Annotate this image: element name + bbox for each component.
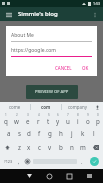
staticText: i — [77, 117, 79, 125]
button[interactable]: Space — [32, 154, 78, 169]
button[interactable]: 2 — [11, 112, 22, 126]
button[interactable]: 8 — [73, 112, 83, 126]
staticText: come — [9, 104, 21, 110]
button[interactable]: s — [14, 126, 24, 140]
staticText: 9 — [87, 113, 89, 117]
staticText: 2 — [16, 113, 18, 117]
button[interactable]: d — [24, 126, 34, 140]
staticText: 3 — [27, 113, 29, 117]
staticText: p — [96, 117, 100, 125]
staticText: a — [7, 129, 11, 137]
button[interactable]: b — [55, 140, 66, 154]
staticText: o — [86, 117, 90, 125]
staticText: m — [80, 143, 86, 151]
staticText: Simmie's blog — [18, 10, 58, 18]
staticText: 4 — [38, 113, 40, 117]
button[interactable]: Delete — [88, 140, 103, 154]
button[interactable]: Emoji — [23, 154, 32, 169]
staticText: k — [81, 129, 85, 137]
staticText: c — [38, 143, 41, 151]
button[interactable]: 9 — [83, 112, 93, 126]
staticText: CANCEL — [55, 65, 72, 71]
staticText: 1:53 — [93, 1, 101, 6]
button[interactable]: Voice input — [92, 102, 103, 112]
button[interactable]: j — [66, 126, 77, 140]
staticText: https://google.com — [11, 47, 56, 54]
button[interactable]: Back — [19, 169, 39, 183]
staticText: d — [27, 129, 31, 137]
staticText: ?123 — [4, 159, 13, 164]
staticText: f — [38, 129, 41, 137]
staticText: w — [14, 117, 19, 125]
button[interactable]: come — [0, 102, 30, 112]
button[interactable]: c — [34, 140, 44, 154]
staticText: n — [70, 143, 74, 151]
button[interactable]: f — [34, 126, 44, 140]
button[interactable]: h — [55, 126, 66, 140]
button[interactable]: company — [62, 102, 92, 112]
staticText: 8 — [77, 113, 79, 117]
staticText: j — [71, 129, 73, 137]
staticText: company — [68, 104, 87, 110]
staticText: s — [18, 129, 21, 137]
button[interactable]: 4 — [33, 112, 43, 126]
button[interactable]: Recent apps — [59, 169, 79, 183]
staticText: x — [27, 143, 31, 151]
button[interactable]: 6 — [53, 112, 63, 126]
button[interactable]: v — [44, 140, 55, 154]
staticText: . — [81, 158, 83, 165]
staticText: l — [93, 129, 95, 137]
button[interactable]: com — [31, 102, 61, 112]
button[interactable]: g — [44, 126, 55, 140]
button[interactable]: Open navigation drawer — [4, 10, 13, 19]
button[interactable]: . — [78, 154, 86, 169]
staticText: b — [59, 143, 63, 151]
button[interactable]: 5 — [43, 112, 53, 126]
staticText: e — [26, 117, 30, 125]
staticText: h — [59, 129, 63, 137]
staticText: com — [41, 104, 51, 110]
button[interactable]: 7 — [63, 112, 73, 126]
staticText: OK — [82, 65, 89, 71]
staticText: t — [47, 117, 50, 125]
button[interactable]: n — [66, 140, 77, 154]
staticText: 1 — [5, 113, 7, 117]
button[interactable]: , — [15, 154, 23, 169]
button[interactable]: PREVIEW OF APP — [26, 85, 78, 99]
button[interactable]: x — [24, 140, 34, 154]
button[interactable]: Enter — [86, 154, 102, 169]
staticText: 7 — [67, 113, 69, 117]
staticText: r — [37, 117, 40, 125]
button[interactable]: Shift — [0, 140, 14, 154]
staticText: 0 — [97, 113, 99, 117]
button[interactable]: a — [4, 126, 14, 140]
staticText: u — [66, 117, 70, 125]
button[interactable]: 3 — [22, 112, 33, 126]
button[interactable]: m — [77, 140, 88, 154]
button[interactable]: CANCEL — [52, 63, 75, 73]
button[interactable]: l — [88, 126, 99, 140]
button[interactable]: z — [14, 140, 24, 154]
button[interactable]: k — [77, 126, 88, 140]
staticText: 6 — [57, 113, 59, 117]
button[interactable]: 1 — [0, 112, 11, 126]
staticText: q — [4, 117, 8, 125]
button[interactable]: Home — [39, 169, 59, 183]
button[interactable]: 0 — [93, 112, 103, 126]
staticText: PREVIEW OF APP — [35, 89, 69, 95]
staticText: 5 — [48, 113, 50, 117]
button[interactable]: More options — [90, 10, 99, 19]
staticText: y — [56, 117, 60, 125]
staticText: , — [18, 158, 20, 165]
button[interactable]: OK — [79, 63, 92, 73]
button[interactable]: ?123 — [1, 154, 15, 169]
staticText: About Me — [11, 32, 34, 39]
staticText: g — [48, 129, 52, 137]
staticText: v — [48, 143, 52, 151]
staticText: z — [18, 143, 21, 151]
button[interactable]: Hide keyboard — [79, 169, 99, 183]
button[interactable]: https://google.com — [11, 47, 92, 57]
